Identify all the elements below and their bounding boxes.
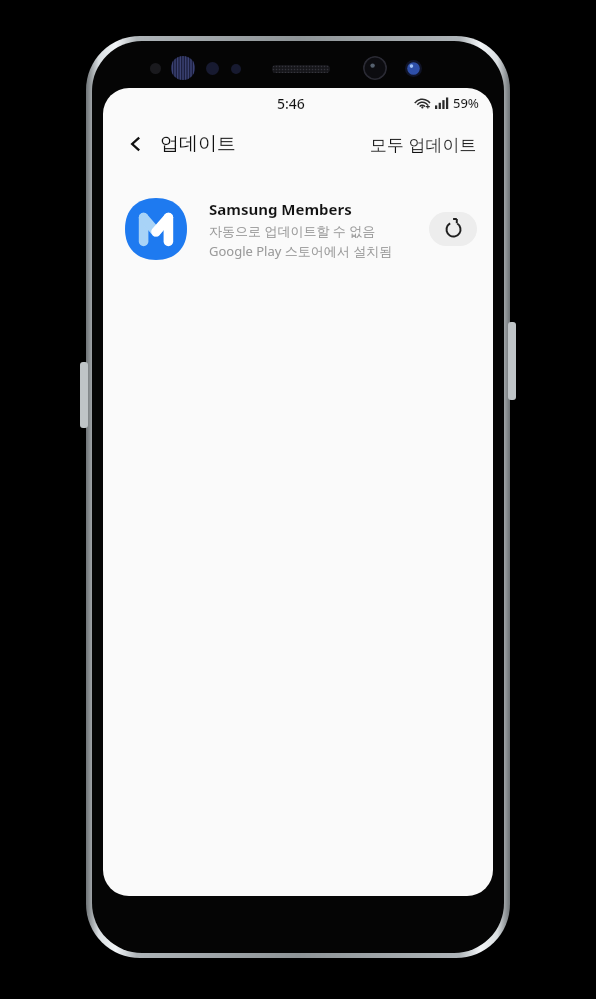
button[interactable]: Samsung Members [103,192,493,266]
button[interactable]: Retry update [429,212,477,246]
staticText: Samsung Members [209,199,352,219]
staticText: 업데이트 [160,132,236,156]
staticText: 59% [453,94,479,112]
staticText: 5:46 [277,94,305,113]
staticText: 자동으로 업데이트할 수 없음 [209,222,376,240]
staticText: Google Play 스토어에서 설치됨 [209,242,393,260]
button[interactable]: Back [117,125,155,163]
button[interactable]: 모두 업데이트 [362,127,485,162]
staticText: 모두 업데이트 [370,133,477,156]
